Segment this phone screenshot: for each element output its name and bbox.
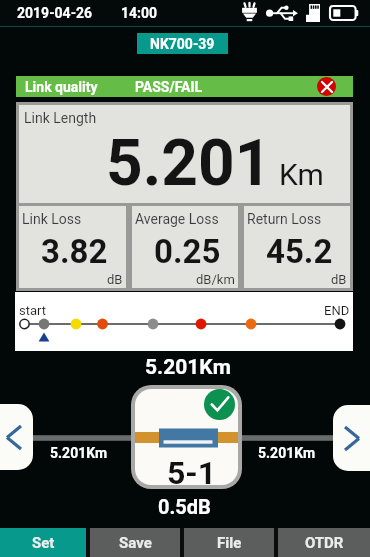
staticText: start	[19, 303, 47, 318]
button[interactable]: Set	[0, 528, 86, 557]
staticText: END	[324, 303, 350, 318]
button[interactable]: OTDR	[278, 528, 370, 557]
staticText: dB/km	[196, 272, 235, 287]
staticText: Link Loss	[22, 211, 82, 227]
staticText: Save	[119, 534, 152, 552]
button[interactable]: NK700-39	[137, 33, 228, 54]
staticText: Link quality	[25, 79, 98, 95]
button[interactable]: Close	[317, 77, 336, 96]
staticText: 2019-04-26	[17, 5, 93, 21]
staticText: 5.201Km	[50, 445, 108, 461]
staticText: 5.201Km	[145, 355, 231, 380]
staticText: NK700-39	[150, 36, 215, 52]
staticText: 0.25	[154, 232, 221, 271]
staticText: dB	[107, 272, 123, 287]
staticText: Average Loss	[135, 211, 219, 227]
staticText: Link Length	[24, 110, 97, 126]
button[interactable]: Next	[333, 405, 370, 471]
button[interactable]: Previous	[0, 404, 33, 470]
staticText: dB	[331, 272, 347, 287]
staticText: 5-1	[167, 454, 217, 485]
staticText: 45.2	[266, 232, 333, 271]
staticText: 14:00	[121, 5, 158, 21]
staticText: Km	[279, 157, 324, 192]
staticText: 3.82	[41, 232, 108, 271]
staticText: File	[217, 534, 242, 552]
staticText: 0.5dB	[158, 495, 211, 518]
button[interactable]: 5-1	[135, 389, 238, 485]
staticText: Return Loss	[247, 211, 322, 227]
staticText: 5.201Km	[258, 445, 316, 461]
button[interactable]: File	[184, 528, 274, 557]
staticText: Set	[32, 534, 55, 552]
staticText: 5.201	[106, 126, 272, 201]
staticText: OTDR	[305, 534, 344, 552]
staticText: PASS/FAIL	[135, 79, 203, 95]
button[interactable]: Save	[90, 528, 180, 557]
